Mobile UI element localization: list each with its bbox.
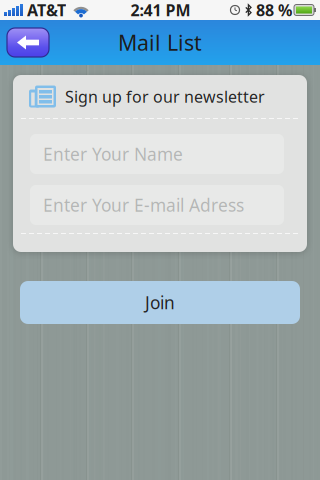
staticText: Enter Your E-mail Adress (43, 193, 244, 216)
staticText: Mail List (118, 28, 202, 57)
staticText: 88 % (256, 0, 292, 21)
staticText: Enter Your Name (43, 142, 183, 165)
staticText: Join (145, 291, 175, 314)
staticText: AT&T (27, 0, 66, 21)
staticText: 2:41 PM (130, 0, 190, 21)
button[interactable]: Join (20, 281, 300, 324)
button[interactable]: Back (7, 28, 49, 57)
staticText: Sign up for our newsletter (65, 86, 265, 107)
